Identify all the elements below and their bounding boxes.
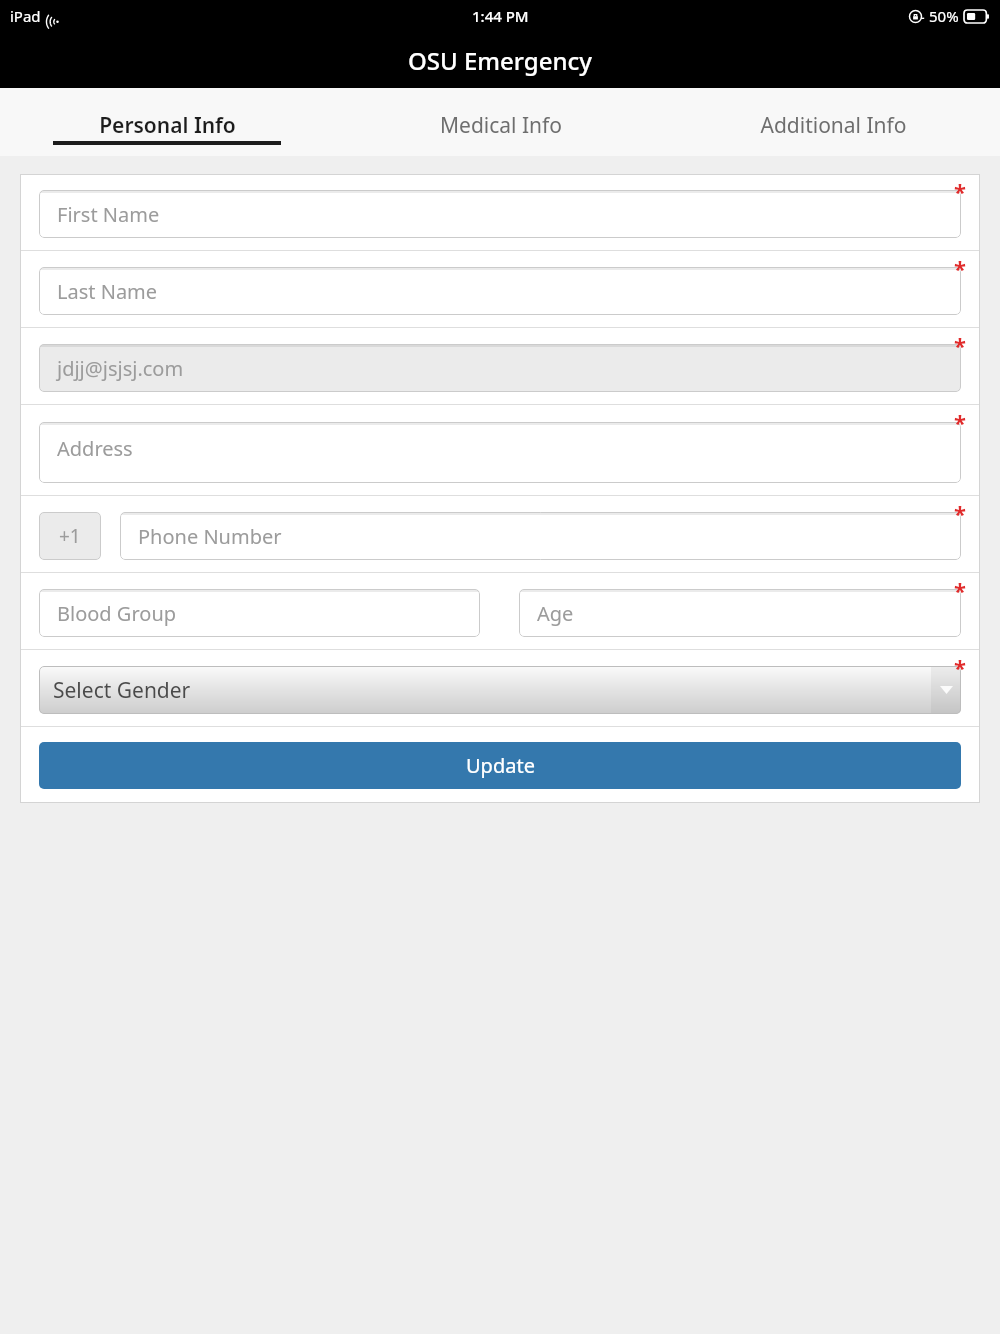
staticText: Select Gender [53,676,191,705]
button[interactable]: Medical Info [334,88,667,156]
button[interactable]: Personal Info [0,88,334,156]
staticText: Blood Group [57,600,177,627]
staticText: Additional Info [760,111,907,140]
button[interactable]: Update [39,742,961,789]
button[interactable]: Blood Group [39,589,480,637]
staticText: OSU Emergency [408,44,592,77]
staticText: * [954,575,966,605]
staticText: Last Name [57,278,158,305]
button[interactable]: jdjj@jsjsj.com [39,344,961,392]
staticText: * [954,176,966,206]
staticText: +1 [59,523,81,549]
staticText: * [954,407,966,437]
staticText: Address [57,435,133,462]
staticText: jdjj@jsjsj.com [57,355,184,382]
staticText: Personal Info [99,111,236,140]
button[interactable]: Phone Number [120,512,961,560]
button[interactable]: First Name [39,190,961,238]
button[interactable]: Age [519,589,961,637]
button[interactable]: Additional Info [667,88,1000,156]
staticText: 1:44 PM [472,6,529,26]
button[interactable]: Last Name [39,267,961,315]
staticText: * [954,652,966,682]
button[interactable]: Country code +1 [39,512,101,560]
button[interactable]: Select Gender [39,666,961,714]
button[interactable]: Address [39,422,961,483]
staticText: Update [466,752,535,779]
staticText: * [954,253,966,283]
staticText: Medical Info [440,111,562,140]
staticText: Age [537,600,574,627]
staticText: * [954,330,966,360]
staticText: Phone Number [138,523,282,550]
staticText: iPad [10,6,41,26]
staticText: First Name [57,201,160,228]
staticText: 50% [929,6,959,26]
staticText: * [954,498,966,528]
